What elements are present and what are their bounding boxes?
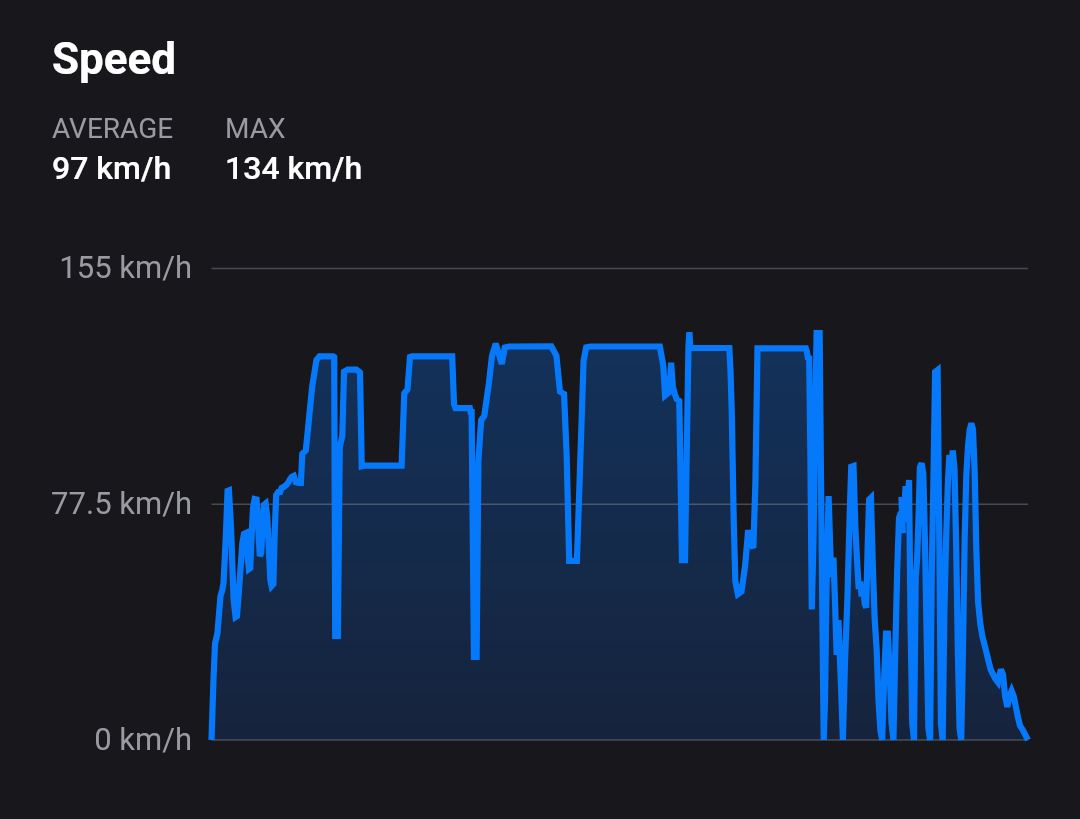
button[interactable]: Speed over time chart [0, 0, 1080, 819]
button[interactable]: MAX [225, 108, 375, 187]
staticText: MAX [225, 112, 286, 145]
staticText: Speed [52, 33, 177, 85]
staticText: AVERAGE [52, 112, 174, 145]
button[interactable]: AVERAGE [52, 108, 202, 187]
staticText: 97 km/h [52, 149, 172, 187]
staticText: 155 km/h [0, 249, 192, 285]
staticText: 0 km/h [0, 721, 192, 757]
staticText: 77.5 km/h [0, 485, 192, 521]
staticText: 134 km/h [225, 149, 363, 187]
